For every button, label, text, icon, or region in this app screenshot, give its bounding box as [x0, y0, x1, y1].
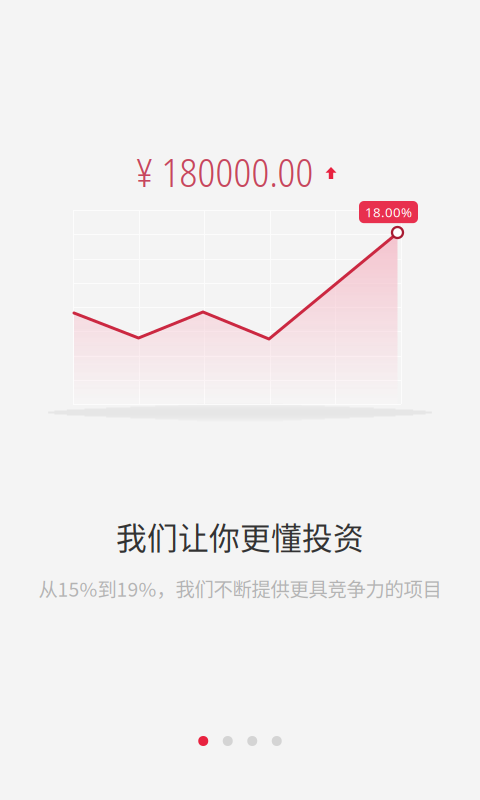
staticText: 我们让你更懂投资 — [116, 514, 364, 558]
staticText: 从15%到19%，我们不断提供更具竞争力的项目 — [38, 574, 441, 602]
staticText: ¥ 180000.00 — [135, 146, 313, 198]
staticText: 18.00% — [365, 203, 412, 221]
